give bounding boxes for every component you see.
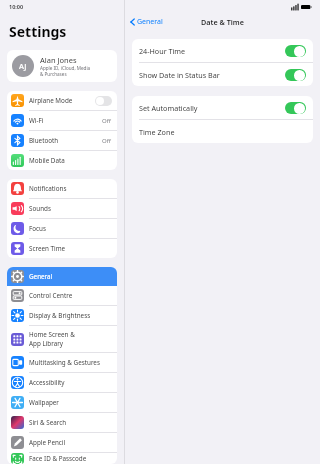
staticText: Bluetooth [29, 136, 102, 145]
staticText: Sounds [29, 204, 113, 213]
staticText: Focus [29, 224, 113, 233]
staticText: Multitasking & Gestures [29, 358, 113, 367]
staticText: Date & Time [201, 17, 244, 27]
staticText: Apple Pencil [29, 438, 113, 447]
staticText: Control Centre [29, 291, 113, 300]
staticText: Screen Time [29, 244, 113, 253]
staticText: Wi-Fi [29, 116, 102, 125]
button[interactable]: On [285, 102, 306, 114]
button[interactable]: Home Screen & [7, 326, 117, 352]
staticText: Apple ID, iCloud, Media [40, 65, 91, 71]
staticText: Airplane Mode [29, 96, 95, 105]
button[interactable]: Off [95, 96, 112, 106]
button[interactable]: Set Automatically [132, 96, 313, 119]
button[interactable]: Multitasking & Gestures [7, 353, 117, 372]
staticText: Alan Jones [40, 55, 77, 65]
button[interactable]: Face ID & Passcode [7, 453, 117, 464]
button[interactable]: Display & Brightness [7, 306, 117, 325]
button[interactable]: On [285, 69, 306, 81]
button[interactable]: Wi-Fi [7, 111, 117, 130]
button[interactable]: Sounds [7, 199, 117, 218]
button[interactable]: Bluetooth [7, 131, 117, 150]
button[interactable]: Screen Time [7, 239, 117, 258]
button[interactable]: 24-Hour Time [132, 39, 313, 62]
staticText: Accessibility [29, 378, 113, 387]
button[interactable]: AJ [7, 50, 117, 82]
button[interactable]: Airplane Mode [7, 91, 117, 110]
staticText: Notifications [29, 184, 113, 193]
staticText: Time Zone [139, 127, 306, 137]
button[interactable]: Accessibility [7, 373, 117, 392]
button[interactable]: On [285, 45, 306, 57]
staticText: Off [102, 137, 111, 145]
staticText: Mobile Data [29, 156, 113, 165]
button[interactable]: Time Zone [132, 120, 313, 143]
staticText: Display & Brightness [29, 311, 113, 320]
staticText: General [29, 272, 113, 281]
staticText: App Library [29, 339, 64, 348]
button[interactable]: Notifications [7, 179, 117, 198]
staticText: Off [102, 117, 111, 125]
button[interactable]: Wallpaper [7, 393, 117, 412]
button[interactable]: Focus [7, 219, 117, 238]
button[interactable]: General [125, 17, 167, 27]
staticText: Wallpaper [29, 398, 113, 407]
staticText: 24-Hour Time [139, 46, 285, 56]
staticText: Siri & Search [29, 418, 113, 427]
staticText: General [137, 17, 163, 27]
staticText: Home Screen & [29, 330, 75, 339]
button[interactable]: Show Date in Status Bar [132, 63, 313, 86]
staticText: Face ID & Passcode [29, 454, 113, 463]
staticText: 10:00 [9, 3, 24, 10]
staticText: Set Automatically [139, 103, 285, 113]
staticText: & Purchases [40, 71, 67, 77]
button[interactable]: Mobile Data [7, 151, 117, 170]
button[interactable]: Siri & Search [7, 413, 117, 432]
button[interactable]: Apple Pencil [7, 433, 117, 452]
staticText: AJ [19, 61, 27, 71]
button[interactable]: Control Centre [7, 286, 117, 305]
button[interactable]: General [7, 267, 117, 286]
staticText: Show Date in Status Bar [139, 70, 285, 80]
staticText: Settings [9, 22, 67, 41]
